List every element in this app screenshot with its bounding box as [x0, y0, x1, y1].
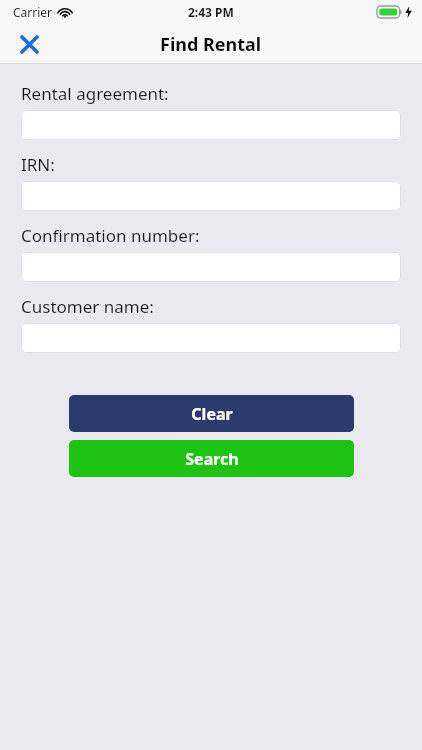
button[interactable]: Clear: [69, 395, 354, 432]
button[interactable]: [21, 110, 401, 140]
staticText: Carrier: [13, 4, 53, 20]
staticText: Search: [185, 448, 239, 470]
staticText: Customer name:: [21, 295, 154, 318]
staticText: 2:43 PM: [188, 4, 234, 20]
button[interactable]: [21, 323, 401, 353]
staticText: IRN:: [21, 153, 55, 176]
staticText: Rental agreement:: [21, 82, 169, 105]
button[interactable]: Search: [69, 440, 354, 477]
staticText: Confirmation number:: [21, 224, 200, 247]
button[interactable]: [21, 252, 401, 282]
staticText: Clear: [191, 403, 233, 425]
staticText: Find Rental: [160, 32, 262, 57]
button[interactable]: Close: [12, 27, 46, 61]
button[interactable]: [21, 181, 401, 211]
